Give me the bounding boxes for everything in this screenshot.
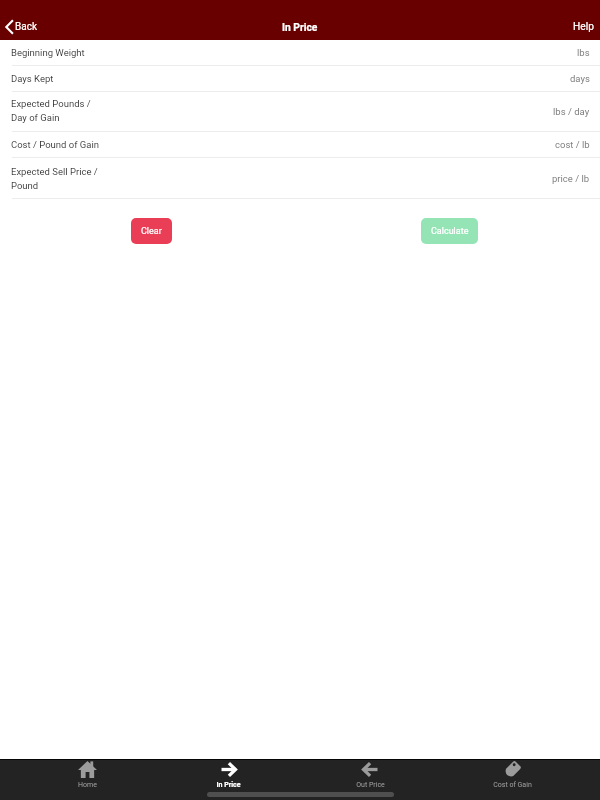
button[interactable]: Home [17, 759, 158, 800]
staticText: Days Kept [11, 73, 570, 84]
staticText: Beginning Weight [11, 47, 577, 58]
other: Cost of Gain [503, 761, 522, 778]
staticText: Out Price [356, 781, 385, 789]
other: Home [78, 761, 97, 778]
staticText: days [570, 73, 590, 84]
other: Out Price [361, 761, 380, 778]
other: In Price [219, 761, 238, 778]
staticText: Cost / Pound of Gain [11, 139, 555, 150]
staticText: Home [78, 781, 97, 789]
staticText: Back [15, 21, 37, 33]
staticText: Expected Pounds / Day of Gain [11, 98, 553, 124]
button[interactable]: Help [562, 17, 600, 37]
button[interactable]: Beginning Weight [0, 40, 600, 65]
button[interactable]: Calculate [421, 218, 478, 244]
button[interactable]: Expected Sell Price / Pound [0, 158, 600, 199]
staticText: Cost of Gain [493, 781, 532, 789]
button[interactable]: Out Price [299, 759, 441, 800]
button[interactable]: Cost of Gain [441, 759, 583, 800]
staticText: lbs / day [553, 106, 590, 117]
staticText: Expected Sell Price / Pound [11, 166, 552, 192]
staticText: In Price [216, 781, 241, 789]
staticText: Clear [141, 226, 162, 237]
staticText: In Price [282, 21, 318, 33]
staticText: cost / lb [555, 139, 590, 150]
button[interactable]: Days Kept [0, 65, 600, 91]
staticText: lbs [577, 47, 590, 58]
button[interactable]: Cost / Pound of Gain [0, 131, 600, 157]
button[interactable]: Clear [131, 218, 172, 244]
staticText: Calculate [431, 226, 469, 237]
staticText: Help [573, 21, 594, 33]
button[interactable]: Expected Pounds / Day of Gain [0, 91, 600, 131]
staticText: price / lb [552, 173, 590, 184]
button[interactable]: Back [0, 16, 47, 38]
button[interactable]: In Price [158, 759, 299, 800]
